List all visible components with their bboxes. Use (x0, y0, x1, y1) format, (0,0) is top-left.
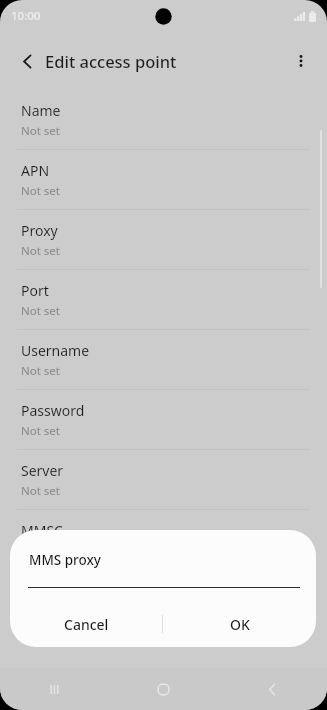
button[interactable]: Cancel (10, 601, 162, 647)
button[interactable]: APN (0, 150, 327, 209)
button[interactable]: More options (283, 43, 319, 79)
staticText: 10:00 (11, 8, 41, 24)
staticText: Password (21, 401, 85, 420)
staticText: Not set (21, 543, 60, 559)
staticText: MMS proxy (21, 581, 95, 600)
button[interactable]: Password (0, 390, 327, 449)
staticText: Not set (21, 183, 60, 199)
button[interactable]: MMSC (0, 510, 327, 569)
staticText: Username (21, 341, 90, 360)
staticText: MMSC (21, 521, 63, 540)
button[interactable]: Recents (0, 668, 109, 710)
button[interactable]: Username (0, 330, 327, 389)
staticText: MMS proxy (29, 551, 101, 569)
staticText: Not set (21, 483, 60, 499)
staticText: Name (21, 101, 61, 120)
button[interactable]: Proxy (0, 210, 327, 269)
staticText: Not set (21, 303, 60, 319)
staticText: Cancel (64, 615, 109, 634)
button[interactable]: Port (0, 270, 327, 329)
button[interactable]: Name (0, 90, 327, 149)
staticText: Not set (21, 363, 60, 379)
staticText: APN (21, 161, 50, 180)
staticText: Edit access point (45, 50, 177, 72)
button[interactable]: Back (218, 668, 327, 710)
staticText: OK (230, 615, 250, 634)
button[interactable]: Back (9, 43, 45, 79)
staticText: Not set (21, 423, 60, 439)
staticText: Not set (21, 243, 60, 259)
staticText: Proxy (21, 221, 58, 240)
staticText: Server (21, 461, 64, 480)
staticText: Not set (21, 123, 60, 139)
button[interactable]: OK (163, 601, 316, 647)
button[interactable]: Server (0, 450, 327, 509)
staticText: Port (21, 281, 49, 300)
button[interactable]: MMS proxy (0, 570, 327, 629)
